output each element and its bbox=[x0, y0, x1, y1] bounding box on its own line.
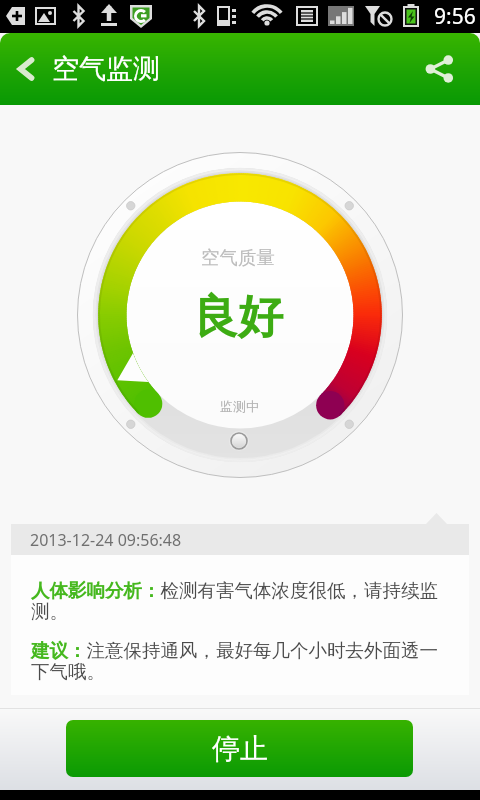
staticText: 停止 bbox=[212, 731, 268, 766]
staticText: 9:56 bbox=[434, 2, 476, 31]
staticText: 良好 bbox=[193, 289, 283, 346]
staticText: 2013-12-24 09:56:48 bbox=[30, 529, 182, 551]
staticText: 空气质量 bbox=[201, 246, 275, 269]
staticText: 人体影响分析：检测有害气体浓度很低，请持续监测。 bbox=[31, 579, 447, 624]
button[interactable]: Share bbox=[398, 33, 480, 105]
button[interactable]: 停止 bbox=[66, 720, 413, 777]
staticText: 监测中 bbox=[220, 398, 259, 414]
staticText: 空气监测 bbox=[52, 52, 160, 86]
button[interactable]: Back bbox=[0, 33, 52, 105]
staticText: 建议：注意保持通风，最好每几个小时去外面透一下气哦。 bbox=[31, 639, 447, 684]
